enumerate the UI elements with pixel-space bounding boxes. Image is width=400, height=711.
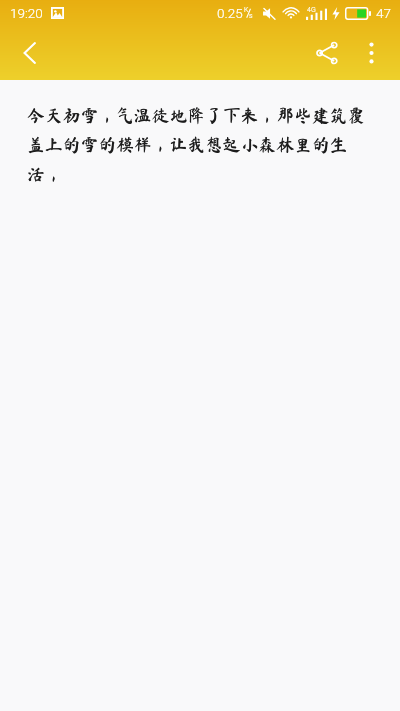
- staticText: 今天初雪，气温徒地降了下来，那些建筑覆 盖上的雪的模样，让我想起小森林里的生 活…: [27, 106, 366, 184]
- staticText: 0.25: [217, 5, 243, 21]
- staticText: 今天初雪，气温徒地降了下来，那些建筑覆 盖上的雪的模样，让我想起小森林里的生 活…: [27, 106, 366, 184]
- button[interactable]: Share: [304, 30, 350, 76]
- staticText: s: [249, 12, 253, 20]
- button[interactable]: Back: [5, 29, 53, 77]
- staticText: K: [244, 6, 249, 14]
- staticText: 47: [376, 5, 391, 21]
- staticText: 4G: [307, 6, 316, 14]
- staticText: 19:20: [10, 5, 43, 21]
- button[interactable]: More options: [350, 32, 392, 74]
